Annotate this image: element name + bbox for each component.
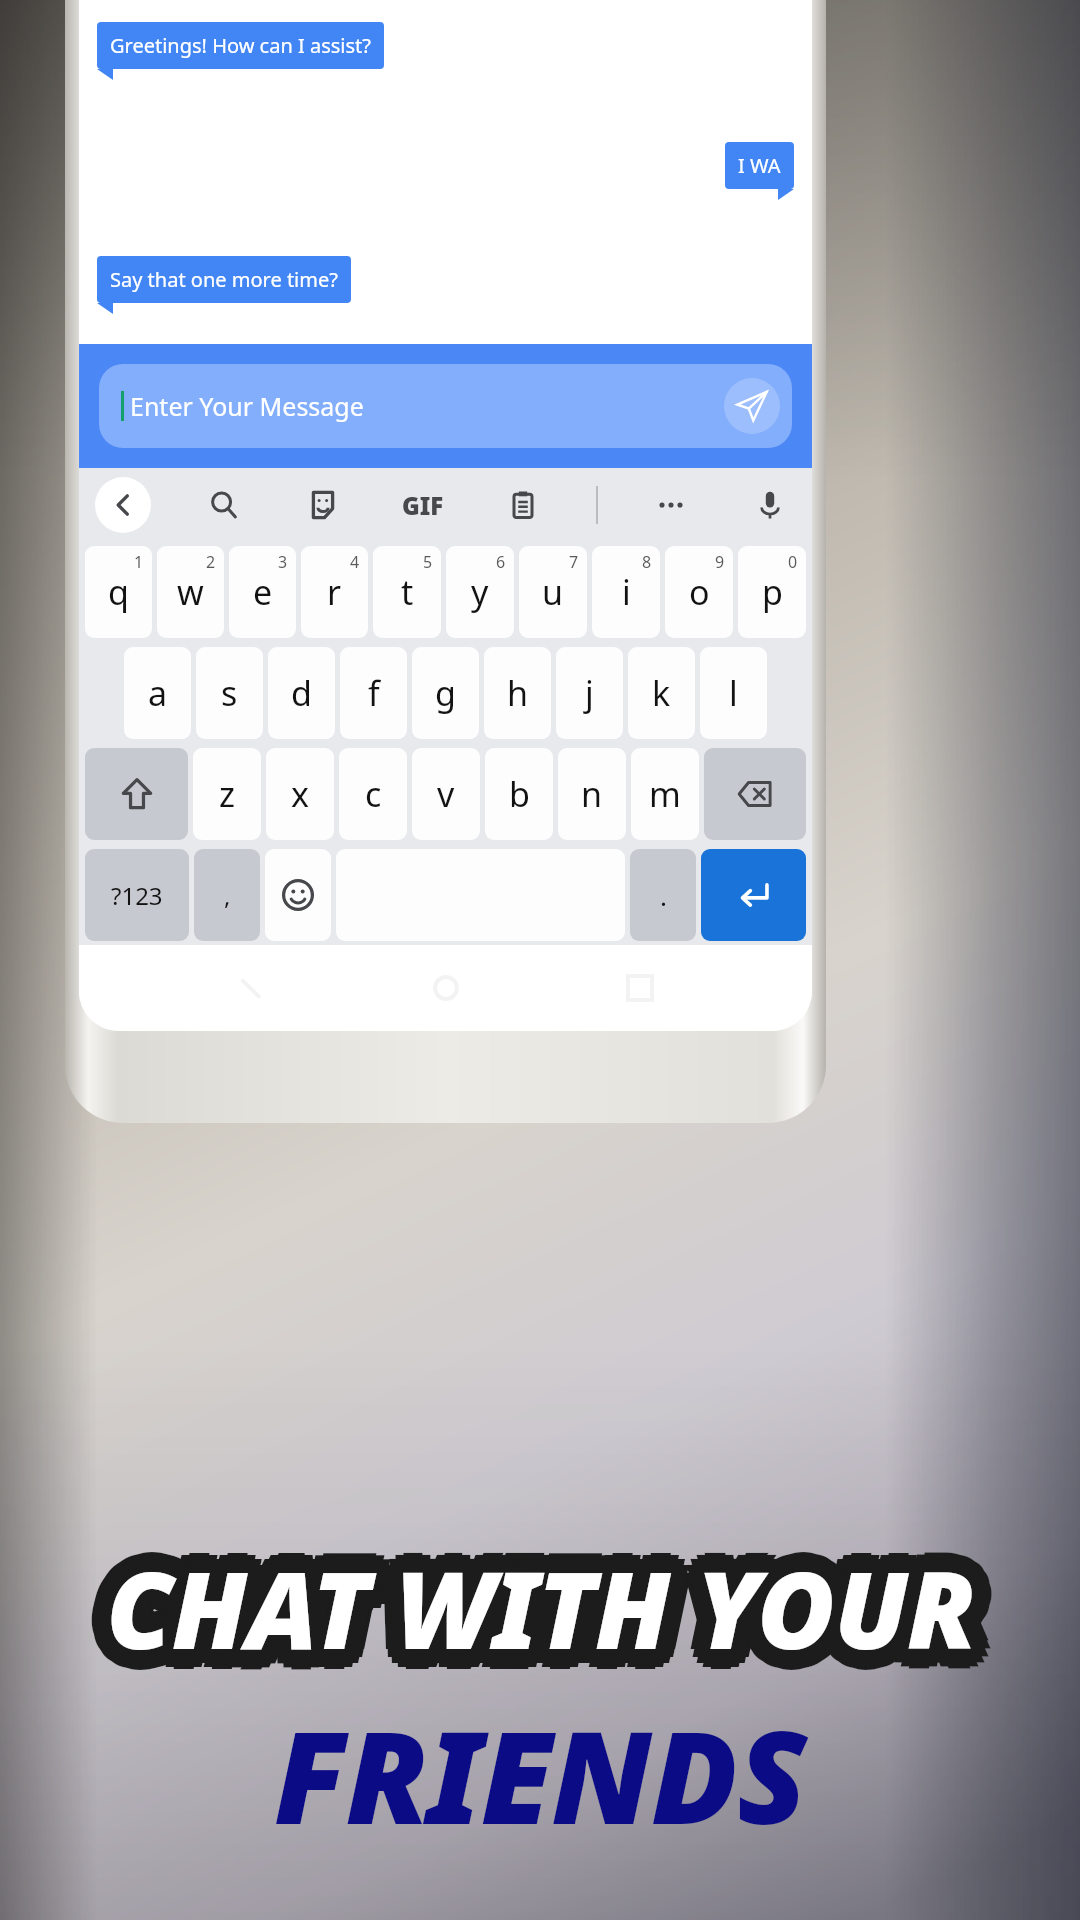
staticText: CHAT WITH YOUR — [98, 1518, 967, 1662]
staticText: CHAT WITH YOUR — [114, 1518, 983, 1662]
button[interactable]: r — [301, 546, 368, 638]
button[interactable]: i — [592, 546, 660, 638]
button[interactable]: t — [373, 546, 441, 638]
staticText: w — [177, 569, 204, 615]
button[interactable]: I WA — [725, 142, 794, 200]
staticText: CHAT WITH YOUR — [106, 1556, 975, 1700]
button[interactable]: More — [645, 479, 697, 531]
staticText: 6 — [496, 551, 506, 573]
staticText: h — [507, 670, 529, 716]
button[interactable]: d — [268, 647, 335, 739]
staticText: 8 — [642, 551, 652, 573]
button[interactable]: z — [193, 748, 261, 840]
button[interactable]: h — [484, 647, 551, 739]
button[interactable]: b — [485, 748, 553, 840]
staticText: . — [660, 878, 667, 913]
staticText: e — [253, 569, 273, 615]
staticText: CHAT WITH YOUR — [120, 1550, 989, 1694]
button[interactable]: Home — [424, 966, 468, 1010]
button[interactable]: l — [700, 647, 767, 739]
staticText: 2 — [206, 551, 216, 573]
button[interactable]: Stickers — [297, 479, 349, 531]
button[interactable]: m — [631, 748, 699, 840]
staticText: CHAT WITH YOUR — [114, 1554, 983, 1698]
staticText: Greetings! How can I assist? — [110, 32, 371, 59]
staticText: f — [368, 670, 380, 716]
button[interactable]: e — [229, 546, 296, 638]
staticText: 1 — [134, 551, 144, 573]
staticText: s — [221, 670, 238, 716]
button[interactable]: q — [85, 546, 152, 638]
button[interactable]: p — [738, 546, 806, 638]
button[interactable]: GIF — [396, 483, 450, 528]
staticText: a — [148, 670, 168, 716]
staticText: Enter Your Message — [130, 389, 724, 423]
staticText: CHAT WITH YOUR — [92, 1550, 961, 1694]
button[interactable]: Say that one more time? — [97, 256, 351, 314]
staticText: CHAT WITH YOUR — [106, 1516, 975, 1660]
staticText: FRIENDS — [274, 1688, 806, 1862]
staticText: u — [542, 569, 564, 615]
staticText: l — [729, 670, 738, 716]
button[interactable]: f — [340, 647, 407, 739]
staticText: r — [327, 569, 342, 615]
staticText: 0 — [788, 551, 798, 573]
staticText: m — [649, 771, 681, 817]
staticText: Say that one more time? — [110, 266, 338, 293]
button[interactable]: Recents — [618, 966, 662, 1010]
staticText: CHAT WITH YOUR — [88, 1544, 957, 1688]
staticText: ?123 — [111, 879, 163, 912]
button[interactable]: s — [196, 647, 263, 739]
button[interactable]: w — [157, 546, 224, 638]
staticText: GIF — [402, 489, 444, 522]
staticText: t — [401, 569, 414, 615]
button[interactable]: n — [558, 748, 626, 840]
button[interactable]: o — [665, 546, 733, 638]
button[interactable]: Voice input — [744, 479, 796, 531]
staticText: I WA — [738, 152, 781, 179]
button[interactable]: Greetings! How can I assist? — [97, 22, 384, 80]
button[interactable]: Enter Your Message — [99, 364, 792, 448]
button[interactable]: u — [519, 546, 587, 638]
button[interactable]: Send — [724, 378, 780, 434]
staticText: CHAT WITH YOUR — [124, 1528, 993, 1672]
staticText: CHAT WITH YOUR — [120, 1522, 989, 1666]
staticText: k — [652, 670, 671, 716]
staticText: v — [437, 771, 455, 817]
button[interactable]: Search — [198, 479, 250, 531]
staticText: j — [585, 670, 594, 716]
button[interactable]: y — [446, 546, 514, 638]
staticText: o — [689, 569, 710, 615]
button[interactable]: a — [124, 647, 191, 739]
button[interactable]: Enter — [701, 849, 806, 941]
button[interactable]: Backspace — [704, 748, 806, 840]
staticText: 7 — [569, 551, 579, 573]
button[interactable]: g — [412, 647, 479, 739]
button[interactable]: j — [556, 647, 623, 739]
button[interactable]: ?123 — [85, 849, 189, 941]
button[interactable]: c — [339, 748, 407, 840]
staticText: d — [291, 670, 312, 716]
staticText: i — [622, 569, 631, 615]
button[interactable]: Emoji — [265, 849, 331, 941]
staticText: CHAT WITH YOUR — [98, 1554, 967, 1698]
staticText: CHAT WITH YOUR — [88, 1528, 957, 1672]
button[interactable]: Clipboard — [497, 479, 549, 531]
staticText: q — [108, 569, 129, 615]
staticText: , — [224, 879, 231, 912]
staticText: CHAT WITH YOUR — [92, 1522, 961, 1666]
button[interactable]: , — [194, 849, 260, 941]
staticText: z — [219, 771, 235, 817]
button[interactable]: Back — [95, 477, 151, 533]
staticText: 4 — [350, 551, 360, 573]
button[interactable]: Shift — [85, 748, 188, 840]
button[interactable]: k — [628, 647, 695, 739]
button[interactable]: x — [266, 748, 334, 840]
staticText: CHAT WITH YOUR — [106, 1536, 975, 1680]
button[interactable]: . — [630, 849, 696, 941]
button[interactable]: v — [412, 748, 480, 840]
staticText: 3 — [278, 551, 288, 573]
staticText: c — [365, 771, 382, 817]
